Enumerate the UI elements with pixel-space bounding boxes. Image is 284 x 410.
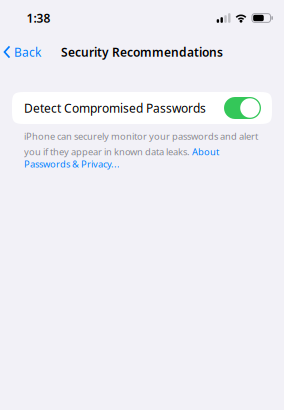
staticText: Passwords & Privacy... [24,158,120,170]
staticText: Back [14,44,41,60]
button[interactable]: Detect Compromised Passwords [0,92,284,124]
button[interactable]: Passwords & Privacy... [24,158,120,170]
staticText: you if they appear in known data leaks. [24,145,192,158]
button[interactable]: About [192,145,219,158]
staticText: Detect Compromised Passwords [24,100,206,116]
staticText: 1:38 [26,10,50,26]
staticText: iPhone can securely monitor your passwor… [24,130,258,142]
staticText: About [192,145,219,158]
button[interactable]: Back [0,44,41,60]
staticText: Security Recommendations [61,44,223,60]
